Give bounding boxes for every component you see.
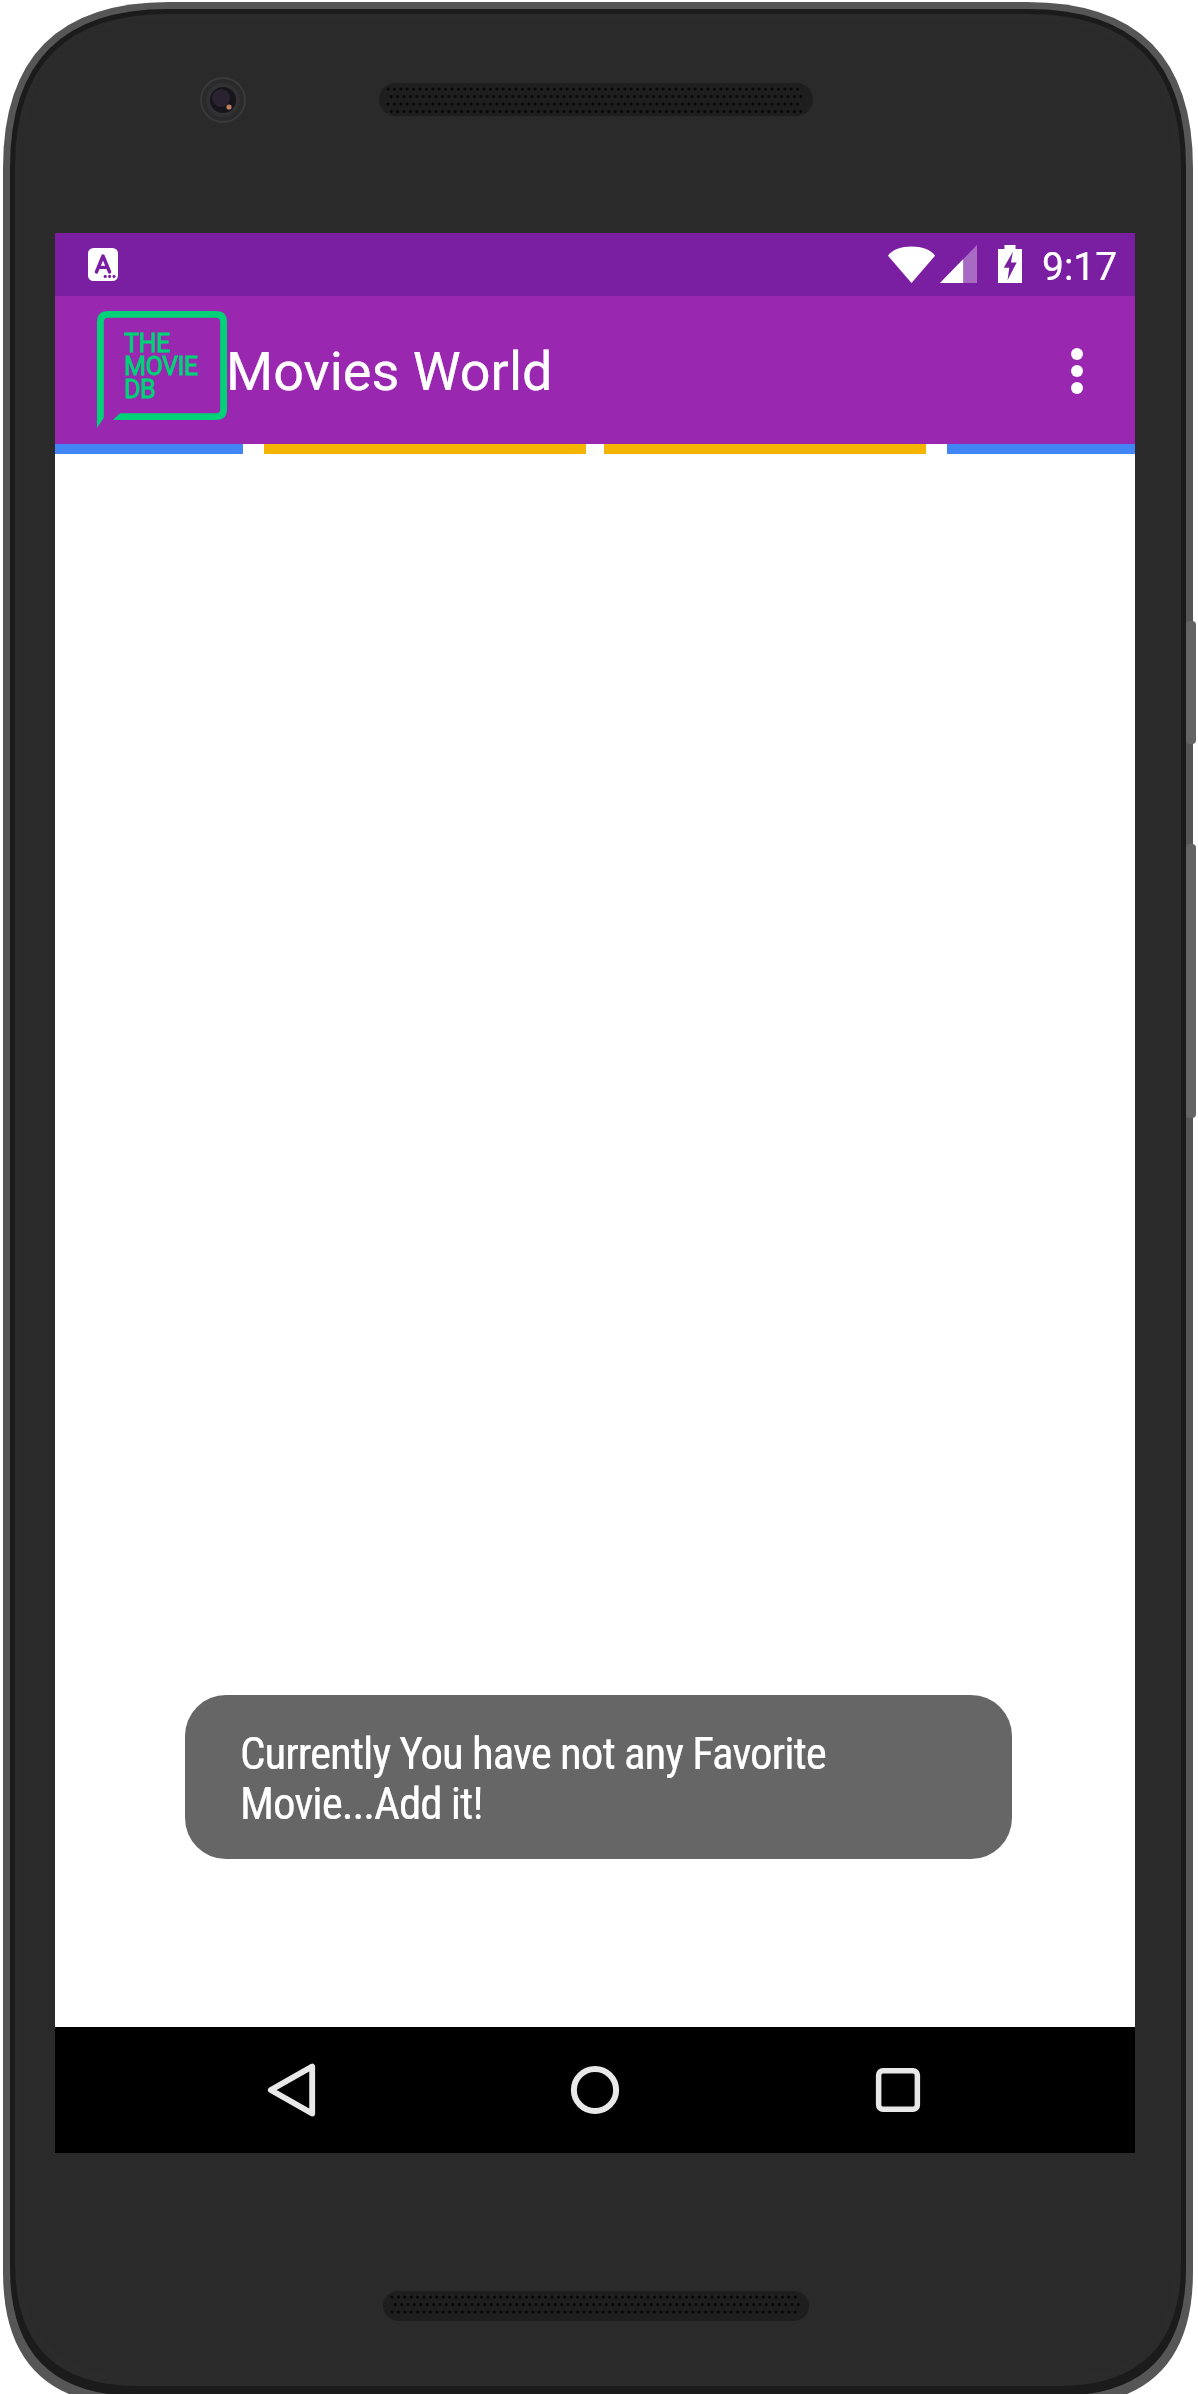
button[interactable]: Recent apps <box>850 2042 946 2138</box>
button[interactable]: Back <box>243 2042 339 2138</box>
button[interactable]: Currently You have not any Favorite Movi… <box>185 1695 1012 1859</box>
staticText: DB <box>124 375 156 404</box>
staticText: Movies World <box>226 340 553 403</box>
staticText: Currently You have not any Favorite Movi… <box>240 1727 880 1830</box>
staticText: 9:17 <box>1042 244 1118 290</box>
button[interactable]: Home <box>547 2042 643 2138</box>
button[interactable]: More options <box>1029 322 1125 419</box>
staticText: THE <box>124 329 170 358</box>
staticText: MOVIE <box>124 352 198 381</box>
